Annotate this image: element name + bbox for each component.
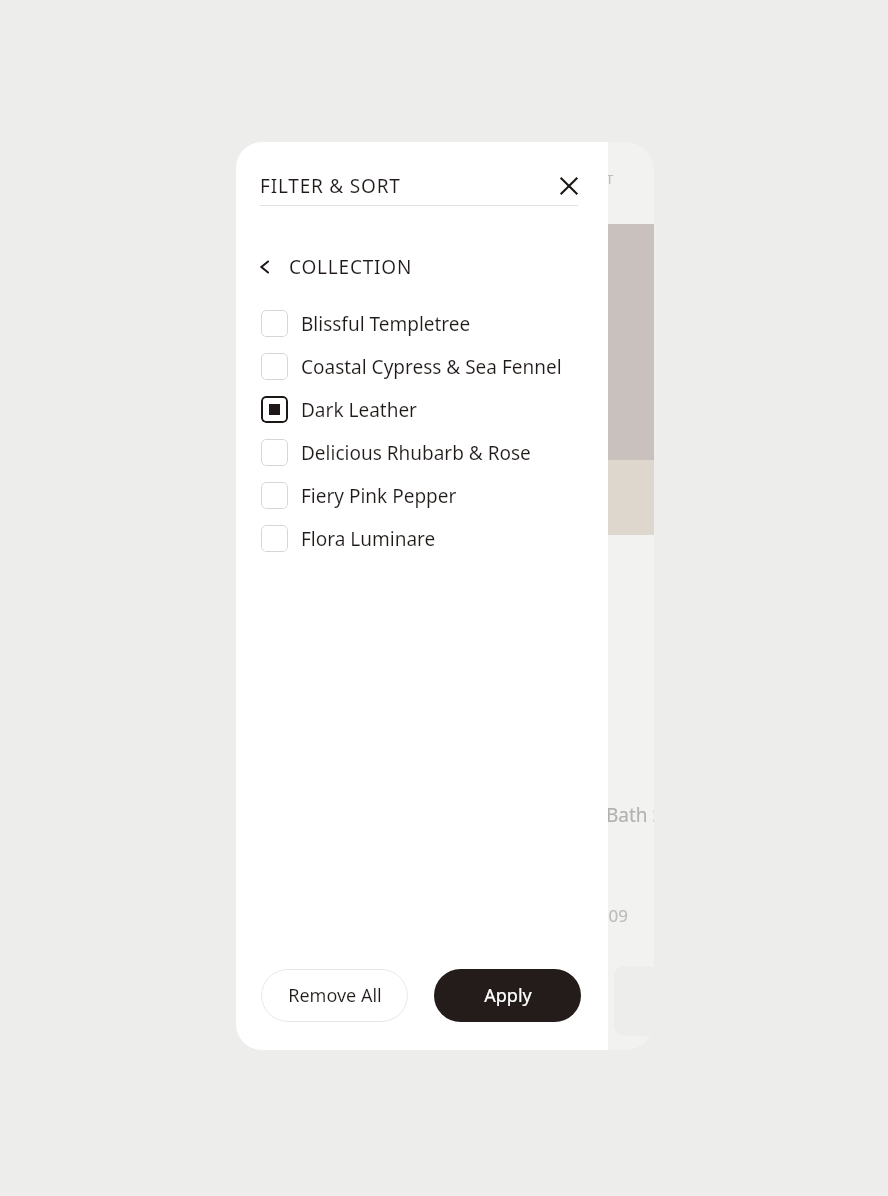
button[interactable]: Fiery Pink Pepper <box>236 474 608 517</box>
button[interactable]: Apply <box>434 969 581 1022</box>
staticText: Coastal Cypress & Sea Fennel <box>301 354 562 380</box>
staticText: Remove All <box>288 983 382 1008</box>
button[interactable]: Back <box>236 246 608 288</box>
staticText: Delicious Rhubarb & Rose <box>301 440 531 466</box>
button[interactable]: Remove All <box>261 969 408 1022</box>
button[interactable]: Coastal Cypress & Sea Fennel <box>236 345 608 388</box>
staticText: Flora Luminare <box>301 526 436 552</box>
button[interactable]: Dark Leather <box>236 388 608 431</box>
button[interactable]: Delicious Rhubarb & Rose <box>236 431 608 474</box>
staticText: Dark Leather <box>301 397 417 423</box>
staticText: Apply <box>484 983 532 1008</box>
staticText: FILTER & SORT <box>260 173 401 199</box>
staticText: Blissful Templetree <box>301 311 471 337</box>
staticText: Fiery Pink Pepper <box>301 483 457 509</box>
button[interactable]: Flora Luminare <box>236 517 608 560</box>
staticText: COLLECTION <box>289 254 413 280</box>
button[interactable]: Close <box>548 165 590 207</box>
staticText: .09 <box>604 904 629 927</box>
staticText: T <box>606 170 614 184</box>
other: Back <box>258 260 272 274</box>
staticText: Bath S <box>606 802 654 828</box>
button[interactable]: Blissful Templetree <box>236 302 608 345</box>
